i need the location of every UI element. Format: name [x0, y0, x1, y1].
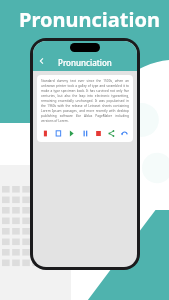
button[interactable]: Back	[36, 55, 48, 67]
button[interactable]: Copy	[54, 129, 63, 138]
button[interactable]: Standard dummy text ever since the 1500s…	[37, 75, 133, 142]
staticText: Pronunciation	[19, 6, 160, 33]
staticText: Pronunciation	[58, 57, 112, 68]
button[interactable]: Pause	[81, 129, 90, 138]
button[interactable]: Play	[67, 129, 76, 138]
button[interactable]: Undo	[120, 129, 129, 138]
button[interactable]: Record	[94, 129, 103, 138]
button[interactable]: Stop	[41, 129, 50, 138]
staticText: Standard dummy text ever since the 1500s…	[41, 79, 129, 123]
button[interactable]: Share	[107, 129, 116, 138]
